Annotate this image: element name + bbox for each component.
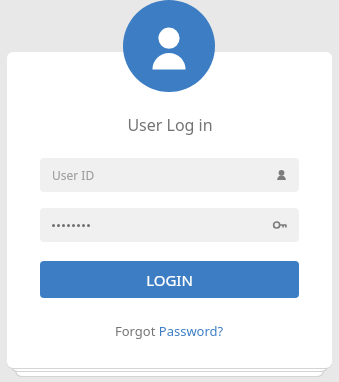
staticText: Forgot Password? — [115, 322, 224, 340]
staticText: LOGIN — [146, 270, 193, 290]
staticText: User ID — [52, 167, 95, 183]
button[interactable]: User ID — [40, 158, 299, 192]
staticText: User Log in — [127, 114, 213, 136]
button[interactable]: Password — [40, 208, 299, 242]
other: User — [276, 170, 287, 181]
other: Password — [273, 218, 287, 232]
button[interactable]: Forgot Password? — [109, 320, 230, 342]
button[interactable]: LOGIN — [40, 261, 299, 298]
